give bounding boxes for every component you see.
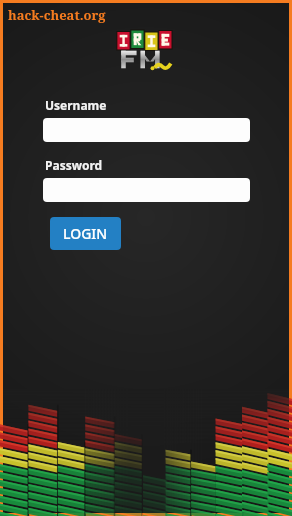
staticText: LOGIN xyxy=(63,224,108,243)
staticText: Username xyxy=(45,97,107,113)
staticText: hack-cheat.org xyxy=(8,6,106,24)
button[interactable]: LOGIN xyxy=(50,217,121,250)
button[interactable]: Password input xyxy=(43,178,250,202)
staticText: Password xyxy=(45,157,103,173)
button[interactable]: Username input xyxy=(43,118,250,142)
